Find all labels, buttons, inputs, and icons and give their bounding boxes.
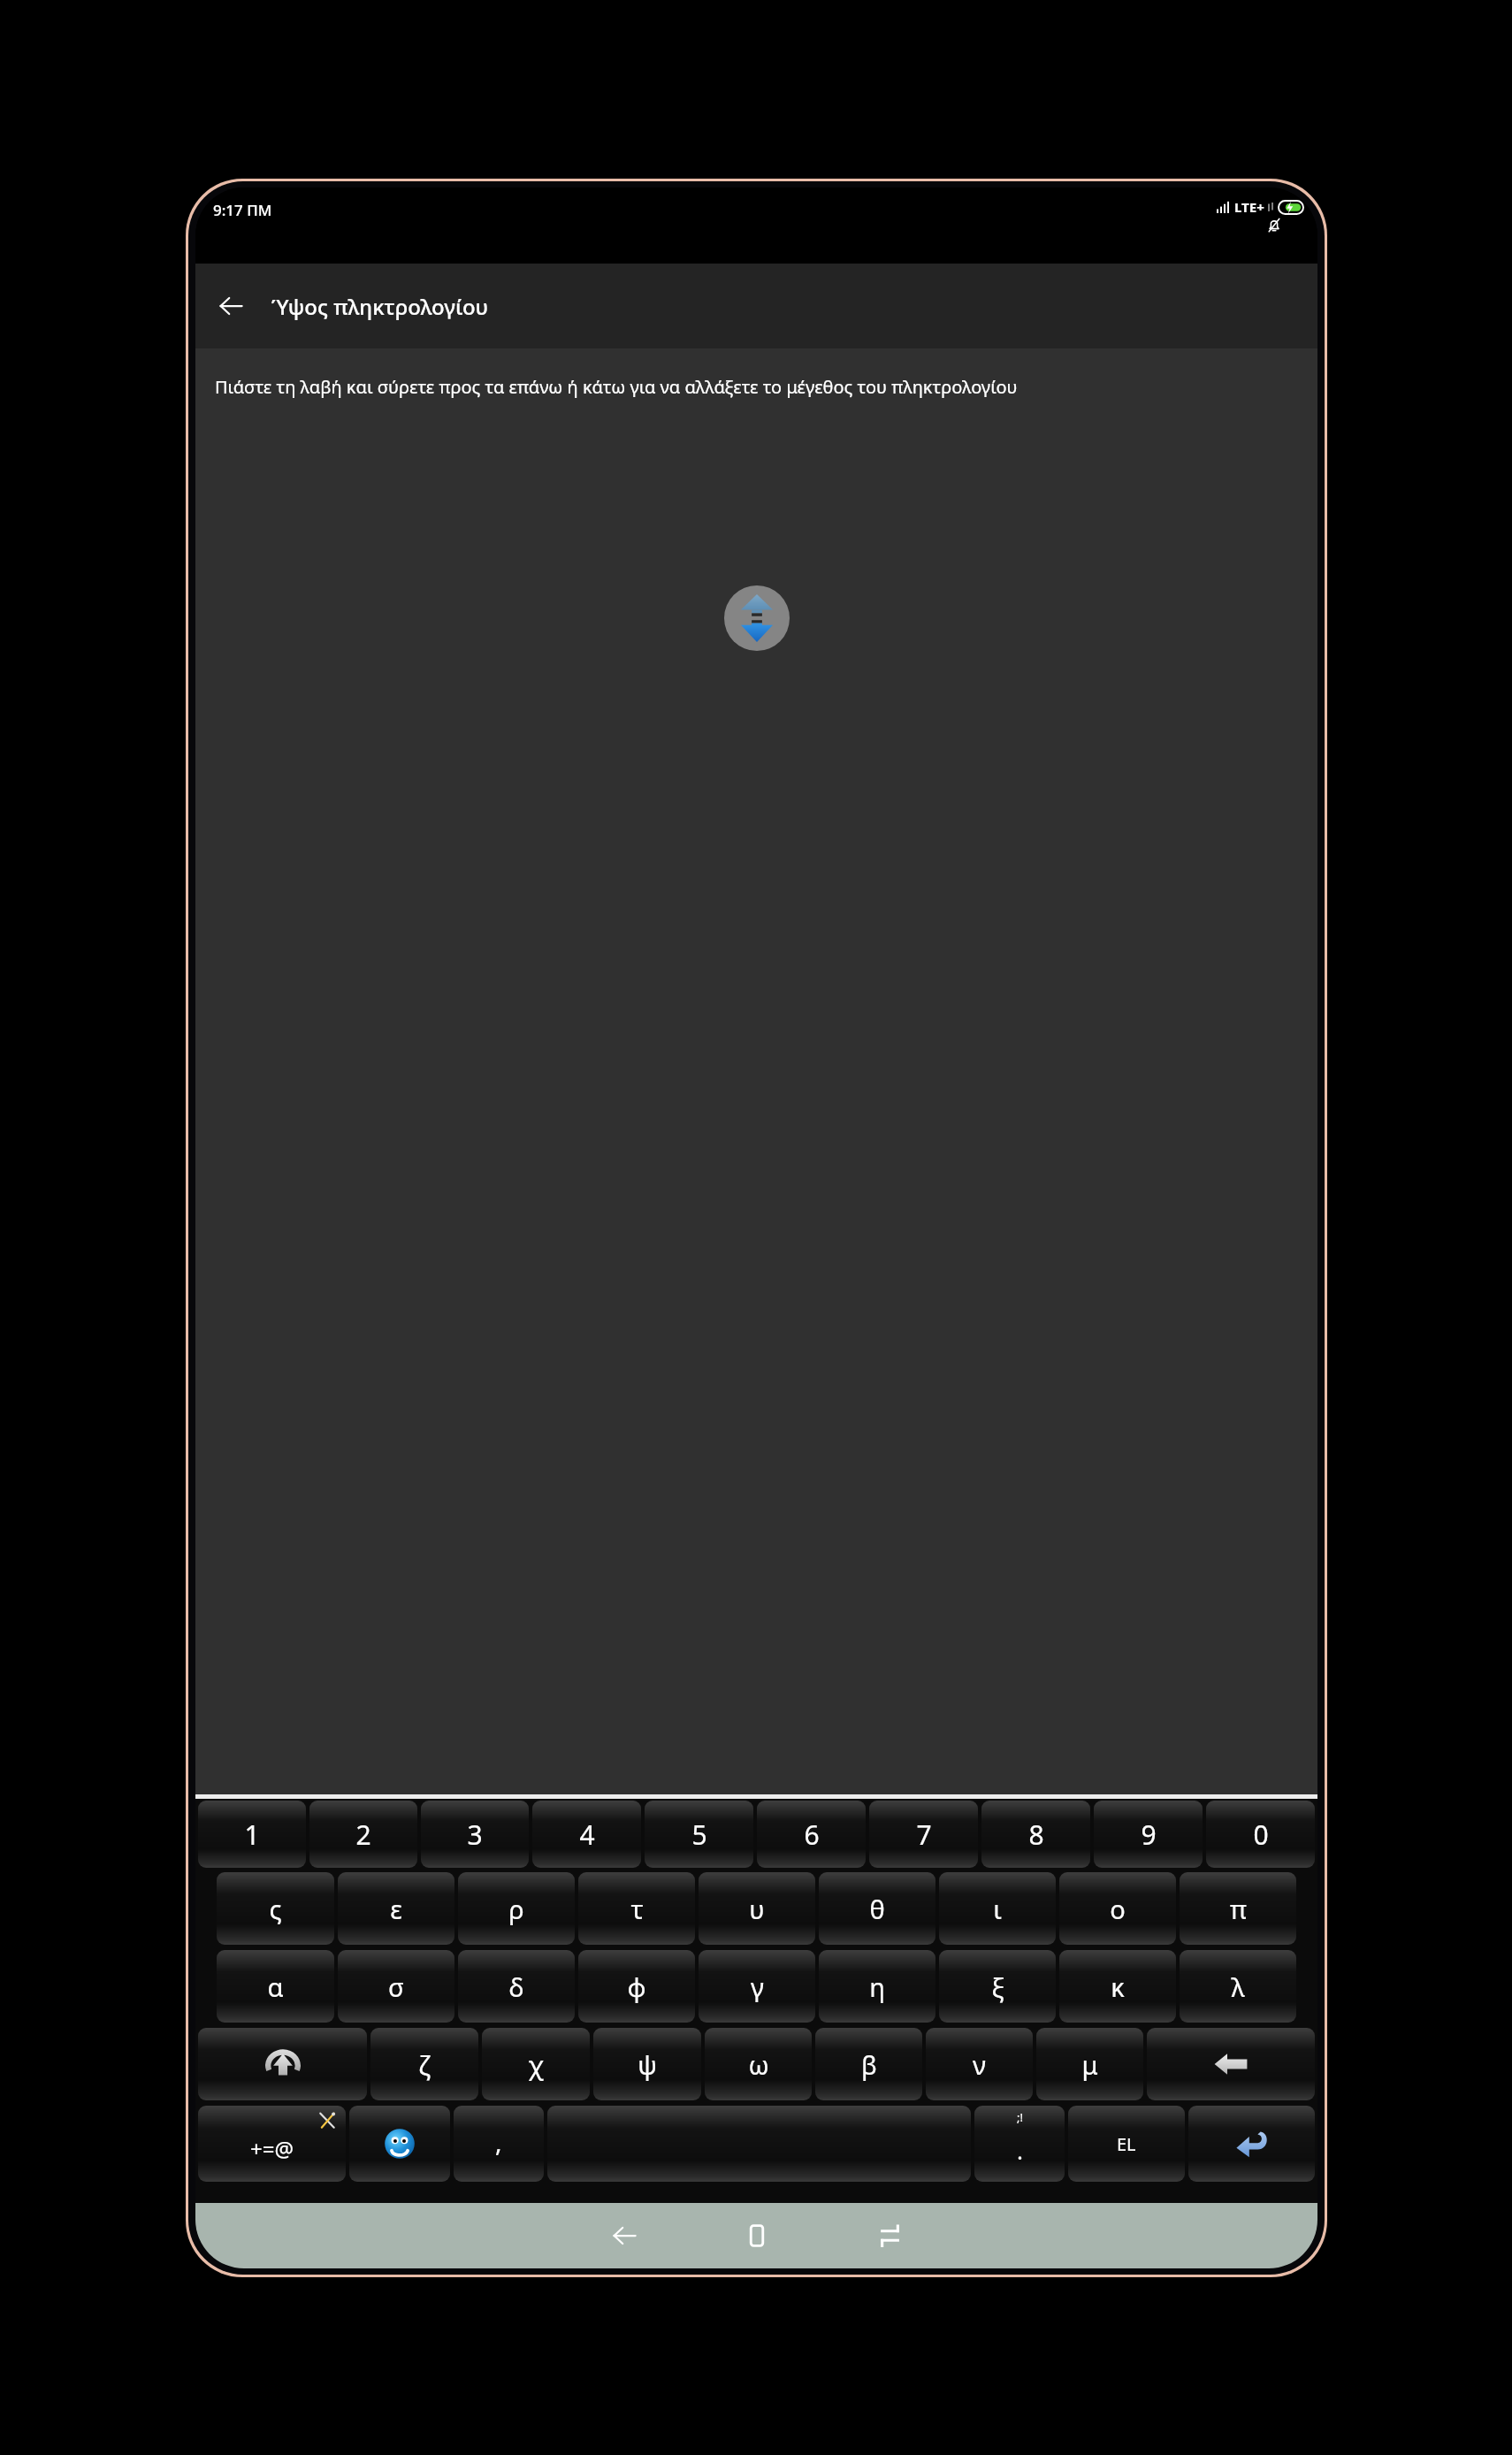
staticText: υ — [749, 1892, 765, 1926]
staticText: ψ — [638, 2047, 657, 2082]
button[interactable]: Shift — [198, 2028, 367, 2100]
button[interactable]: 9 — [1094, 1801, 1203, 1868]
button[interactable]: Space — [547, 2106, 971, 2182]
button[interactable]: 6 — [757, 1801, 866, 1868]
button[interactable]: δ — [458, 1950, 575, 2023]
staticText: LTE+ — [1234, 198, 1264, 216]
button[interactable]: Back — [204, 279, 257, 333]
staticText: ε — [390, 1892, 402, 1926]
button[interactable]: Enter — [1188, 2106, 1315, 2182]
staticText: Ύψος πληκτρολογίου — [271, 292, 489, 321]
staticText: 5 — [691, 1816, 707, 1853]
button[interactable]: 7 — [869, 1801, 978, 1868]
staticText: λ — [1231, 1969, 1245, 2004]
button[interactable]: 2 — [309, 1801, 417, 1868]
staticText: ζ — [418, 2047, 431, 2082]
button[interactable]: ς — [217, 1872, 334, 1945]
staticText: β — [861, 2047, 877, 2082]
button[interactable]: 5 — [645, 1801, 753, 1868]
button[interactable]: ψ — [593, 2028, 701, 2100]
button[interactable]: υ — [699, 1872, 815, 1945]
staticText: ρ — [508, 1892, 524, 1926]
button[interactable]: +=@ — [198, 2106, 346, 2182]
button[interactable]: Recents — [823, 2203, 956, 2268]
staticText: 4 — [579, 1816, 595, 1853]
staticText: π — [1230, 1892, 1247, 1926]
staticText: ν — [973, 2047, 986, 2082]
button[interactable]: ρ — [458, 1872, 575, 1945]
button[interactable]: Home — [691, 2203, 823, 2268]
staticText: κ — [1111, 1969, 1125, 2004]
button[interactable]: θ — [819, 1872, 935, 1945]
button[interactable]: Back — [558, 2203, 691, 2268]
button[interactable]: 0 — [1206, 1801, 1315, 1868]
button[interactable]: Drag to resize keyboard — [724, 585, 790, 651]
staticText: σ — [388, 1969, 404, 2004]
staticText: 7 — [916, 1816, 932, 1853]
staticText: ς — [269, 1892, 282, 1926]
staticText: . — [1017, 2135, 1023, 2166]
button[interactable]: τ — [578, 1872, 695, 1945]
other: Space — [547, 2106, 971, 2182]
staticText: η — [869, 1969, 885, 2004]
staticText: ο — [1110, 1892, 1126, 1926]
staticText: τ — [630, 1892, 644, 1926]
button[interactable]: γ — [699, 1950, 815, 2023]
button[interactable]: κ — [1059, 1950, 1176, 2023]
button[interactable]: ;! — [974, 2106, 1065, 2182]
staticText: 9 — [1141, 1816, 1157, 1853]
staticText: ;! — [1017, 2109, 1023, 2125]
button[interactable]: β — [815, 2028, 922, 2100]
staticText: χ — [528, 2047, 544, 2082]
button[interactable]: 4 — [532, 1801, 641, 1868]
staticText: θ — [869, 1892, 885, 1926]
staticText: μ — [1081, 2047, 1098, 2082]
button[interactable]: , — [454, 2106, 544, 2182]
button[interactable]: σ — [338, 1950, 454, 2023]
staticText: α — [267, 1969, 284, 2004]
button[interactable]: ε — [338, 1872, 454, 1945]
button[interactable]: λ — [1180, 1950, 1296, 2023]
other: Enter — [1234, 2126, 1270, 2161]
button[interactable]: 8 — [981, 1801, 1090, 1868]
staticText: 3 — [467, 1816, 483, 1853]
button[interactable]: 1 — [198, 1801, 306, 1868]
staticText: 6 — [804, 1816, 820, 1853]
other: Shift — [264, 2046, 302, 2083]
button[interactable]: χ — [482, 2028, 590, 2100]
button[interactable]: Emoji — [349, 2106, 450, 2182]
button[interactable]: φ — [578, 1950, 695, 2023]
staticText: γ — [751, 1969, 764, 2004]
button[interactable]: π — [1180, 1872, 1296, 1945]
staticText: +=@ — [250, 2134, 294, 2163]
staticText: ι — [993, 1892, 1002, 1926]
staticText: 2 — [355, 1816, 371, 1853]
other: Backspace — [1213, 2052, 1249, 2076]
button[interactable]: ζ — [370, 2028, 478, 2100]
button[interactable]: ι — [939, 1872, 1056, 1945]
staticText: 0 — [1253, 1816, 1269, 1853]
other: Emoji — [382, 2126, 417, 2161]
staticText: 1 — [244, 1816, 260, 1853]
button[interactable]: 3 — [421, 1801, 529, 1868]
button[interactable]: Backspace — [1147, 2028, 1315, 2100]
staticText: 9:17 ΠΜ — [213, 200, 272, 220]
button[interactable]: μ — [1036, 2028, 1143, 2100]
button[interactable]: ξ — [939, 1950, 1056, 2023]
staticText: , — [495, 2125, 502, 2159]
staticText: φ — [627, 1969, 646, 2004]
staticText: 8 — [1028, 1816, 1044, 1853]
staticText: Πιάστε τη λαβή και σύρετε προς τα επάνω … — [215, 375, 1018, 399]
button[interactable]: EL — [1068, 2106, 1185, 2182]
staticText: EL — [1117, 2132, 1136, 2156]
button[interactable]: η — [819, 1950, 935, 2023]
staticText: ξ — [991, 1969, 1004, 2004]
button[interactable]: ω — [705, 2028, 812, 2100]
button[interactable]: ν — [926, 2028, 1033, 2100]
button[interactable]: α — [217, 1950, 334, 2023]
staticText: δ — [508, 1969, 524, 2004]
staticText: ω — [748, 2047, 769, 2082]
button[interactable]: ο — [1059, 1872, 1176, 1945]
